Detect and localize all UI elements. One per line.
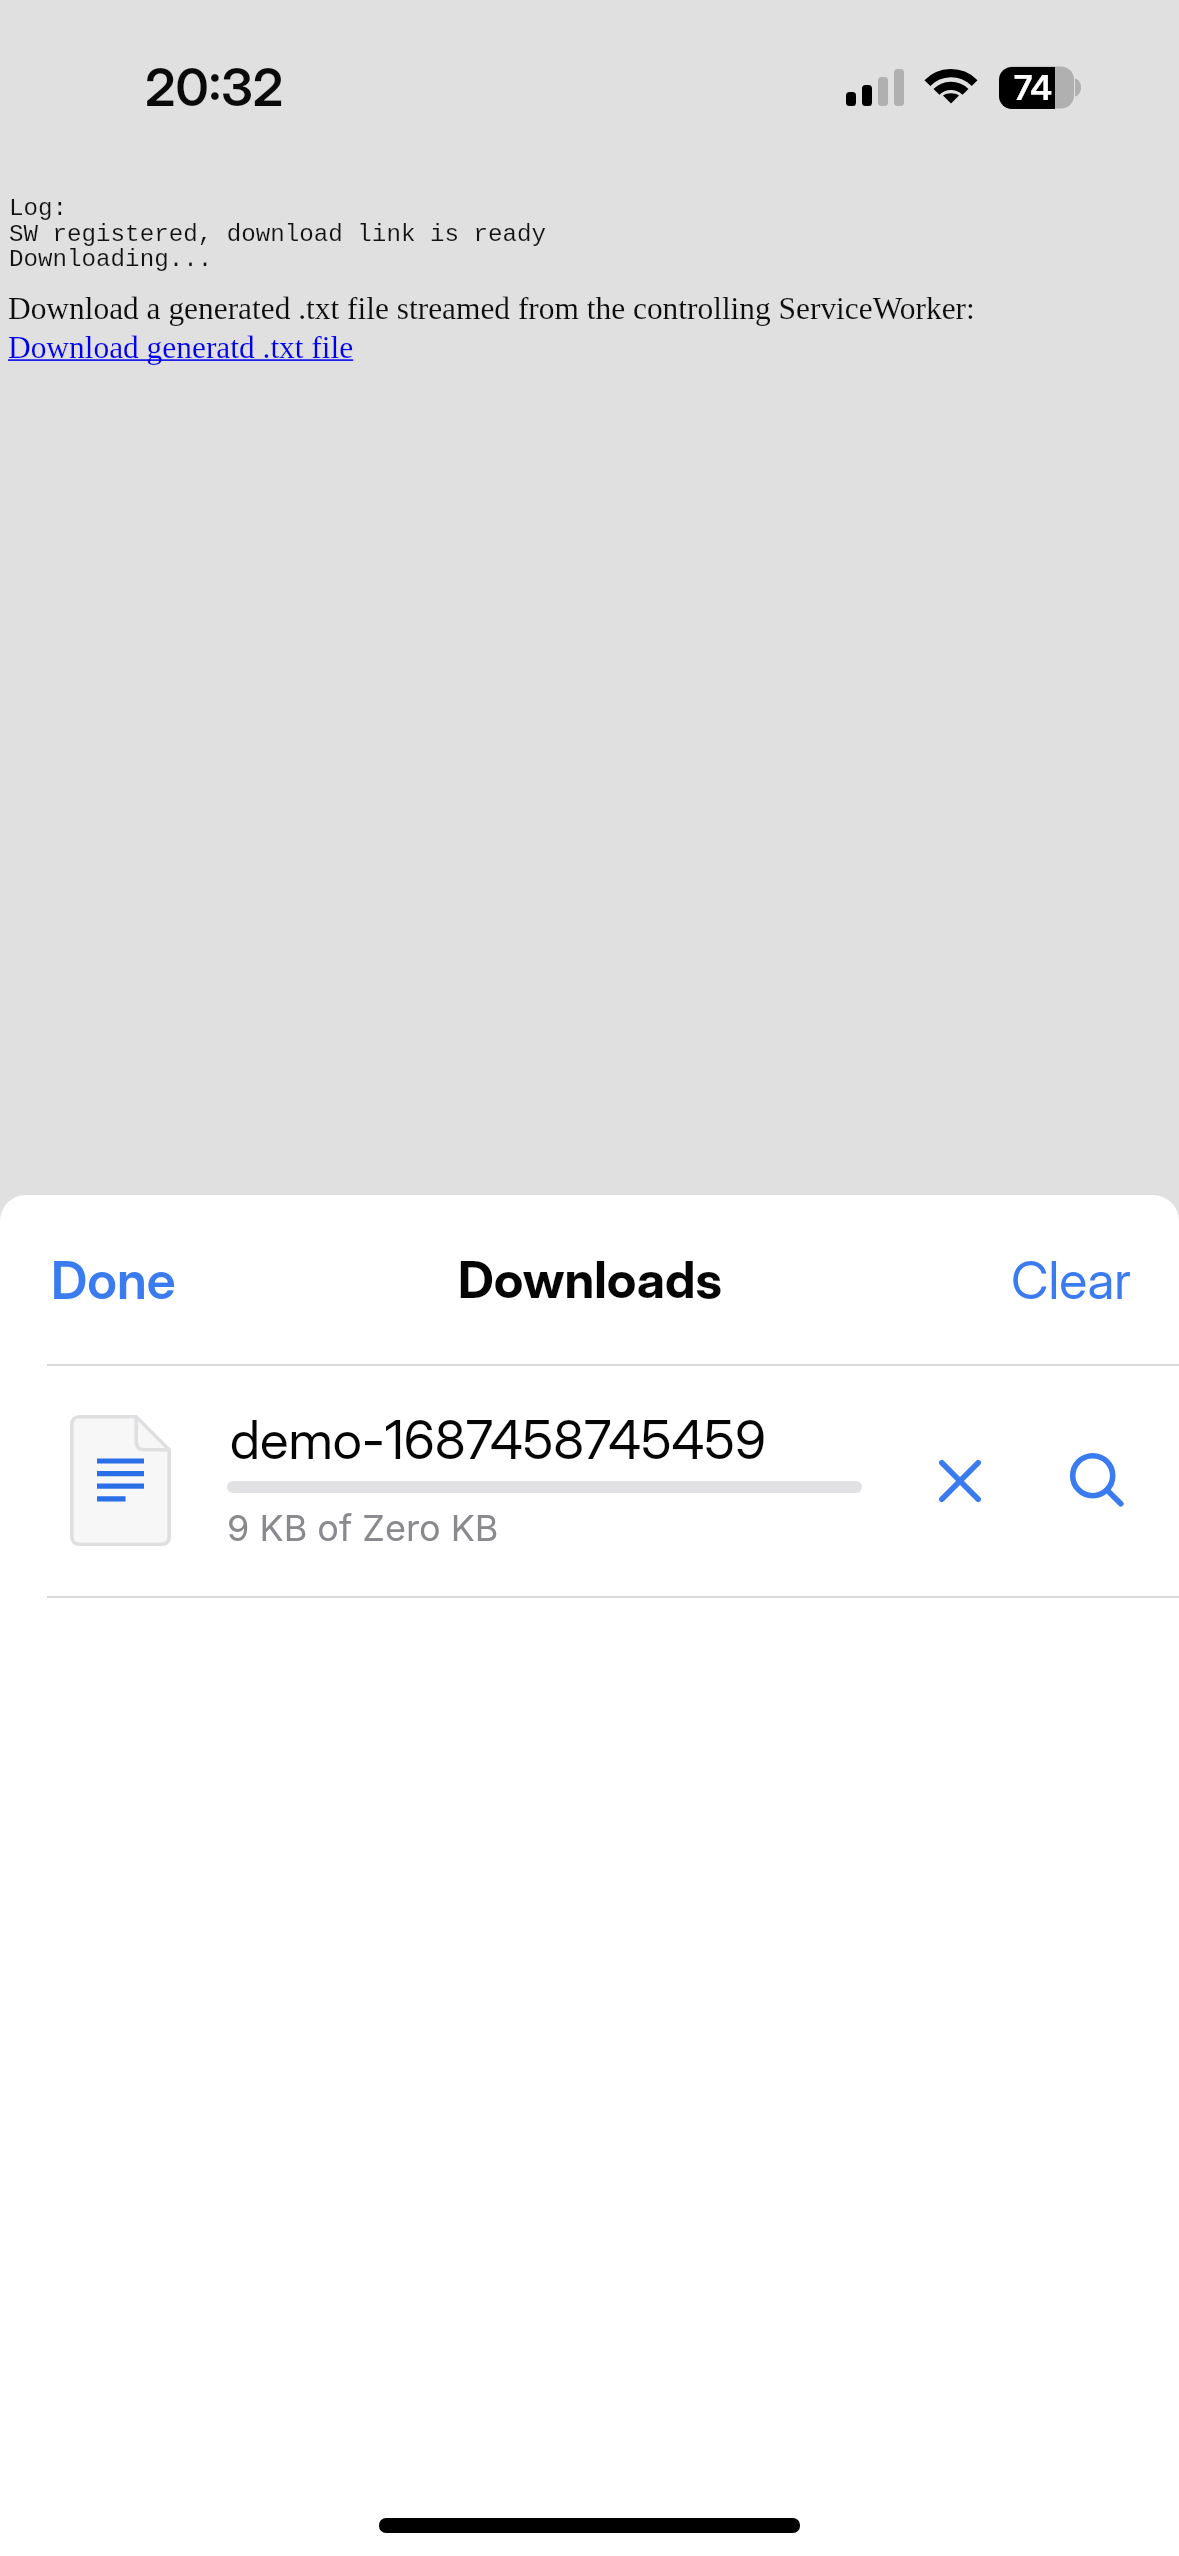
- other: Battery 74 percent: [997, 62, 1089, 112]
- button[interactable]: Done: [21, 1219, 206, 1342]
- staticText: Downloads: [458, 1249, 722, 1311]
- staticText: 74: [1014, 67, 1053, 108]
- button[interactable]: Download generatd .txt file: [8, 330, 354, 365]
- staticText: Done: [51, 1249, 176, 1312]
- button[interactable]: Cancel download: [925, 1446, 995, 1516]
- staticText: Clear: [1011, 1249, 1132, 1312]
- button[interactable]: Clear: [981, 1219, 1162, 1342]
- button[interactable]: Search downloads: [1064, 1447, 1134, 1517]
- other: Cellular signal: [844, 64, 908, 110]
- staticText: 9 KB of Zero KB: [227, 1506, 499, 1550]
- staticText: Log: SW registered, download link is rea…: [9, 195, 547, 273]
- staticText: demo-1687458745459: [230, 1408, 766, 1472]
- staticText: Download generatd .txt file: [8, 330, 354, 365]
- staticText: Download a generated .txt file streamed …: [8, 291, 975, 326]
- staticText: 20:32: [145, 56, 284, 119]
- button[interactable]: demo-1687458745459: [0, 1366, 1179, 1596]
- other: Wi-Fi: [920, 60, 982, 110]
